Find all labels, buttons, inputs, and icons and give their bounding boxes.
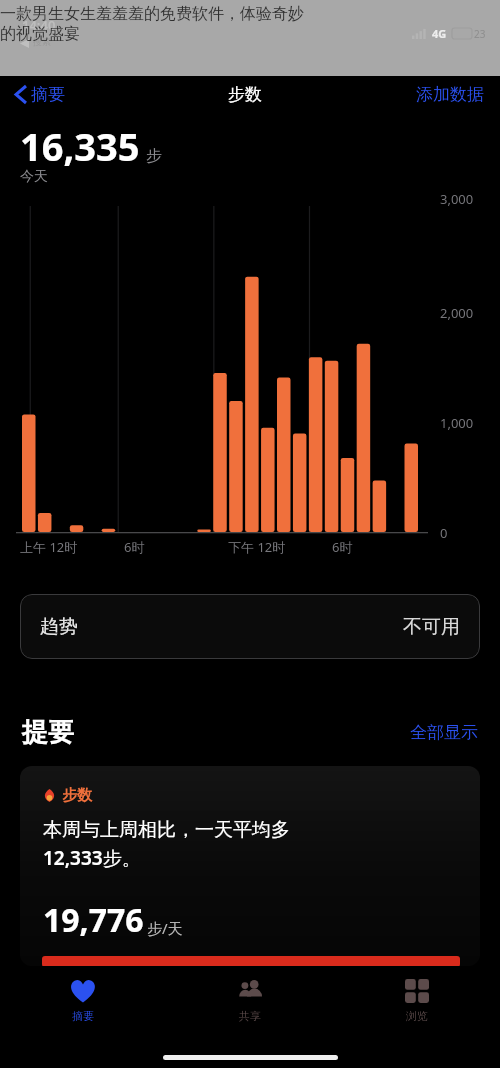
staticText: 提要 — [22, 716, 74, 749]
staticText: 12,333步。 — [43, 845, 141, 871]
staticText: 本周与上周相比，一天平均多 — [43, 818, 290, 842]
staticText: 今天 — [20, 168, 48, 186]
staticText: 浏览 — [406, 1009, 428, 1023]
staticText: 14:40 — [22, 16, 56, 34]
button[interactable]: 趋势 — [20, 594, 480, 659]
staticText: 趋势 — [40, 615, 78, 639]
staticText: 搜索 — [33, 36, 51, 47]
staticText: 1,000 — [440, 414, 474, 432]
staticText: 6时 — [124, 538, 145, 556]
staticText: 摘要 — [72, 1009, 94, 1023]
staticText: 不可用 — [403, 615, 460, 639]
button[interactable]: 摘要 — [0, 968, 166, 1023]
staticText: 共享 — [239, 1009, 261, 1023]
staticText: 步数 — [62, 786, 92, 805]
staticText: 0 — [440, 524, 448, 542]
button[interactable]: 摘要 — [16, 84, 73, 105]
staticText: 6时 — [332, 538, 353, 556]
staticText: 摘要 — [31, 84, 65, 105]
other: 浏览 — [402, 976, 432, 1006]
button[interactable]: 共享 — [166, 968, 333, 1023]
button[interactable]: 全部显示 — [410, 722, 478, 743]
staticText: 4G — [432, 26, 447, 41]
staticText: 步数 — [228, 84, 262, 105]
staticText: 3,000 — [440, 190, 474, 208]
other: 摘要 — [68, 976, 98, 1006]
button[interactable]: 步数 — [20, 766, 480, 966]
staticText: 的视觉盛宴 — [0, 24, 80, 44]
other: 共享 — [235, 976, 265, 1006]
staticText: 上午 12时 — [20, 538, 78, 556]
staticText: 全部显示 — [410, 722, 478, 743]
button[interactable]: 浏览 — [333, 968, 500, 1023]
staticText: 一款男生女生羞羞羞的免费软件，体验奇妙 — [0, 4, 304, 24]
staticText: 步 — [146, 146, 162, 166]
staticText: 19,776 — [43, 898, 144, 942]
staticText: 添加数据 — [416, 84, 484, 105]
staticText: 23 — [474, 27, 486, 41]
staticText: 2,000 — [440, 304, 474, 322]
staticText: 步/天 — [147, 918, 183, 938]
staticText: 16,335 — [20, 120, 140, 172]
staticText: 下午 12时 — [228, 538, 286, 556]
button[interactable]: 添加数据 — [416, 84, 484, 105]
